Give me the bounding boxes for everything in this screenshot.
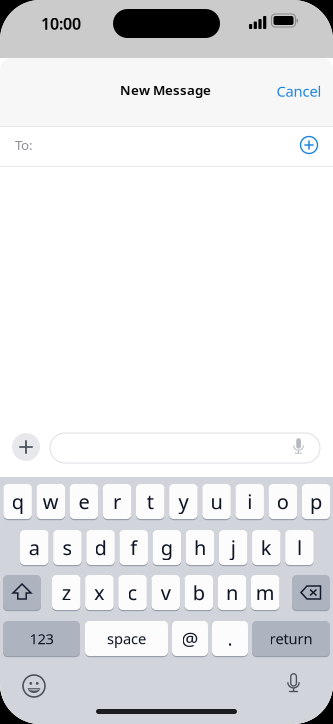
staticText: x: [94, 579, 105, 606]
staticText: 123: [29, 629, 53, 648]
button[interactable]: d: [86, 530, 115, 566]
staticText: g: [161, 534, 173, 561]
button[interactable]: Shift: [3, 575, 41, 611]
staticText: n: [226, 579, 238, 606]
staticText: l: [297, 534, 302, 561]
button[interactable]: j: [219, 530, 247, 566]
button[interactable]: @: [172, 621, 208, 657]
button[interactable]: space: [85, 621, 168, 657]
staticText: v: [161, 579, 171, 606]
staticText: u: [210, 488, 222, 515]
staticText: c: [127, 579, 137, 606]
staticText: j: [231, 534, 236, 561]
staticText: New Message: [120, 81, 211, 99]
staticText: w: [43, 488, 59, 515]
staticText: q: [12, 488, 24, 515]
button[interactable]: .: [212, 621, 248, 657]
button[interactable]: Cancel: [271, 72, 327, 110]
button[interactable]: g: [153, 530, 181, 566]
button[interactable]: q: [3, 484, 32, 520]
staticText: d: [94, 534, 106, 561]
staticText: y: [178, 488, 188, 515]
button[interactable]: Dictation: [285, 672, 302, 695]
staticText: m: [256, 579, 275, 606]
staticText: s: [62, 534, 72, 561]
staticText: @: [181, 626, 198, 651]
button[interactable]: v: [151, 575, 180, 611]
staticText: k: [261, 534, 272, 561]
staticText: To:: [15, 136, 33, 154]
button[interactable]: i: [235, 484, 264, 520]
button[interactable]: Emoji keyboard: [21, 673, 47, 699]
staticText: space: [107, 629, 146, 648]
button[interactable]: Add attachment: [12, 433, 40, 461]
staticText: Cancel: [276, 81, 321, 101]
staticText: f: [130, 534, 137, 561]
staticText: b: [193, 579, 205, 606]
button[interactable]: o: [269, 484, 297, 520]
button[interactable]: Add recipient: [288, 132, 330, 158]
staticText: t: [147, 488, 154, 515]
button[interactable]: n: [218, 575, 246, 611]
button[interactable]: e: [70, 484, 98, 520]
button[interactable]: w: [36, 484, 65, 520]
staticText: e: [78, 488, 89, 515]
button[interactable]: Audio message: [291, 437, 306, 456]
button[interactable]: b: [185, 575, 213, 611]
button[interactable]: z: [52, 575, 80, 611]
staticText: a: [29, 534, 40, 561]
staticText: p: [310, 488, 322, 515]
staticText: z: [62, 579, 71, 606]
staticText: r: [113, 488, 121, 515]
button[interactable]: return: [252, 621, 330, 657]
staticText: .: [227, 626, 232, 651]
button[interactable]: y: [169, 484, 198, 520]
button[interactable]: h: [186, 530, 214, 566]
button[interactable]: Delete: [292, 575, 330, 611]
button[interactable]: k: [252, 530, 280, 566]
button[interactable]: 123: [3, 621, 80, 657]
staticText: o: [277, 488, 289, 515]
button[interactable]: u: [202, 484, 231, 520]
button[interactable]: r: [103, 484, 131, 520]
button[interactable]: p: [302, 484, 330, 520]
button[interactable]: m: [251, 575, 279, 611]
button[interactable]: s: [53, 530, 82, 566]
staticText: 10:00: [41, 13, 81, 34]
staticText: h: [194, 534, 206, 561]
button[interactable]: f: [119, 530, 148, 566]
staticText: i: [247, 488, 252, 515]
button[interactable]: c: [118, 575, 147, 611]
button[interactable]: x: [85, 575, 114, 611]
button[interactable]: t: [136, 484, 164, 520]
button[interactable]: a: [20, 530, 48, 566]
button[interactable]: l: [285, 530, 314, 566]
staticText: return: [269, 629, 312, 648]
